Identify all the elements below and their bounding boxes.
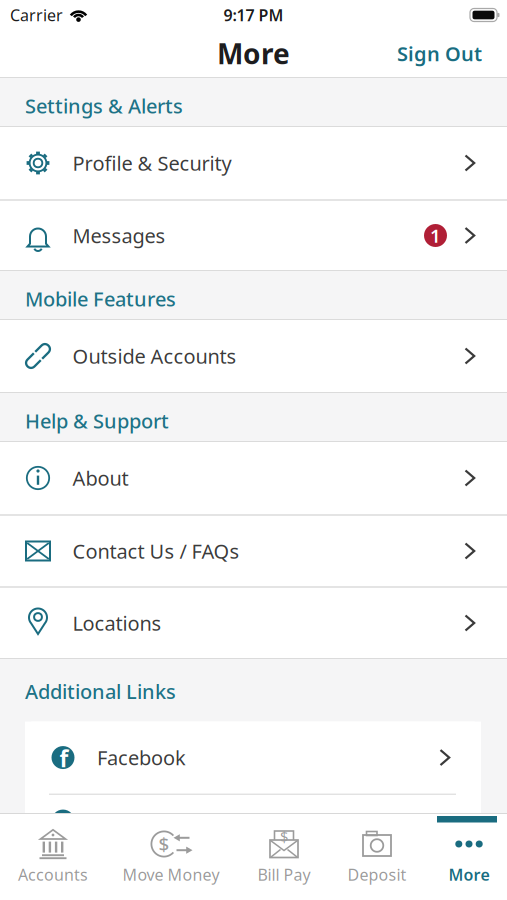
staticText: Profile & Security	[72, 150, 231, 176]
button[interactable]: About	[0, 442, 507, 514]
staticText: $	[158, 832, 169, 856]
staticText: Accounts	[18, 864, 88, 885]
button[interactable]: Locations	[0, 588, 507, 658]
button[interactable]: Deposit	[349, 829, 405, 885]
button[interactable]: $	[254, 829, 314, 885]
staticText: 9:17 PM	[223, 4, 283, 26]
button[interactable]: Profile & Security	[0, 127, 507, 199]
staticText: f	[59, 743, 68, 774]
staticText: Carrier	[10, 4, 63, 26]
button[interactable]: More	[441, 829, 497, 885]
staticText: Locations	[72, 610, 161, 636]
staticText: Sign Out	[397, 40, 482, 67]
staticText: 1	[430, 223, 441, 248]
button[interactable]: Sign Out	[397, 40, 482, 67]
staticText: Facebook	[97, 744, 186, 771]
staticText: More	[448, 864, 489, 885]
staticText: Contact Us / FAQs	[72, 538, 239, 564]
staticText: Deposit	[347, 864, 406, 885]
staticText: Bill Pay	[257, 864, 310, 885]
button[interactable]: f	[25, 722, 481, 794]
button[interactable]: Messages	[0, 201, 507, 270]
button[interactable]: Twitter	[25, 795, 481, 822]
staticText: Settings & Alerts	[25, 92, 183, 119]
staticText: Additional Links	[25, 678, 176, 705]
staticText: Move Money	[122, 864, 219, 885]
button[interactable]: Accounts	[21, 829, 85, 885]
button[interactable]: $	[127, 829, 215, 885]
staticText: Mobile Features	[25, 285, 176, 312]
button[interactable]: Outside Accounts	[0, 320, 507, 392]
staticText: About	[72, 465, 128, 491]
staticText: $	[280, 827, 288, 846]
button[interactable]: Contact Us / FAQs	[0, 516, 507, 586]
staticText: More	[217, 35, 290, 72]
staticText: Messages	[72, 222, 165, 249]
staticText: Help & Support	[25, 407, 169, 434]
staticText: Outside Accounts	[72, 343, 236, 369]
